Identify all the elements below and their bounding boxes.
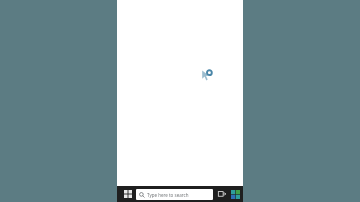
- button[interactable]: Microsoft Store: [228, 186, 242, 202]
- button[interactable]: Task View: [215, 186, 228, 202]
- staticText: Type here to search: [147, 192, 189, 198]
- button[interactable]: Start: [119, 186, 136, 202]
- button[interactable]: Type here to search: [136, 189, 213, 200]
